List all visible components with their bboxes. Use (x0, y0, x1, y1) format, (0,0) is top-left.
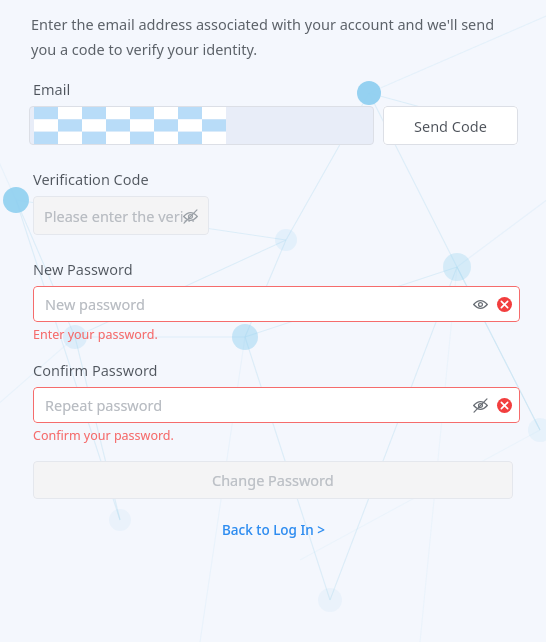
staticText: Verification Code (33, 169, 149, 189)
button[interactable]: Show repeated password (470, 395, 490, 415)
staticText: Confirm Password (33, 360, 158, 380)
button[interactable]: Show verification code (180, 206, 200, 226)
staticText: Change Password (212, 470, 334, 490)
staticText: Back to Log In > (222, 521, 325, 539)
button[interactable]: Change Password (33, 461, 513, 499)
staticText: Email (33, 79, 71, 99)
button[interactable]: New password (33, 286, 520, 322)
button[interactable]: Clear (497, 398, 512, 413)
staticText: Enter the email address associated with … (31, 14, 495, 34)
button[interactable]: Please enter the veri... (33, 196, 209, 235)
staticText: Please enter the veri... (44, 206, 196, 226)
staticText: Confirm your password. (33, 427, 174, 444)
button[interactable] (29, 106, 374, 145)
button[interactable]: Show new password (470, 294, 490, 314)
button[interactable]: Send Code (383, 106, 518, 145)
staticText: Enter your password. (33, 326, 158, 343)
button[interactable]: Back to Log In > (216, 517, 331, 543)
staticText: you a code to verify your identity. (31, 39, 258, 59)
button[interactable]: Clear (497, 297, 512, 312)
staticText: New password (45, 294, 145, 314)
button[interactable]: Repeat password (33, 387, 520, 423)
staticText: Repeat password (45, 395, 163, 415)
staticText: Send Code (414, 116, 487, 136)
staticText: New Password (33, 259, 133, 279)
